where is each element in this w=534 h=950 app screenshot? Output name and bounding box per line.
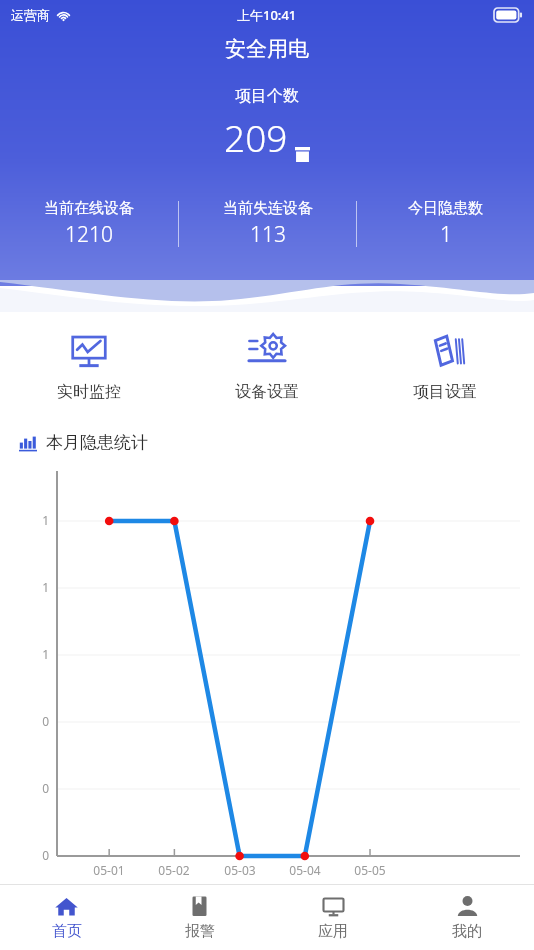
button[interactable]: 当前失连设备 bbox=[179, 188, 356, 260]
staticText: 设备设置 bbox=[235, 382, 299, 402]
staticText: 首页 bbox=[52, 922, 82, 941]
button[interactable]: 今日隐患数 bbox=[357, 188, 534, 260]
staticText: 0 bbox=[35, 780, 49, 796]
staticText: 当前失连设备 bbox=[223, 199, 313, 218]
staticText: 项目个数 bbox=[0, 86, 534, 106]
staticText: 1 bbox=[35, 579, 49, 595]
staticText: 1 bbox=[35, 512, 49, 528]
staticText: 1 bbox=[35, 646, 49, 662]
staticText: 05-02 bbox=[150, 862, 198, 878]
staticText: 安全用电 bbox=[0, 36, 534, 62]
staticText: 实时监控 bbox=[57, 382, 121, 402]
button[interactable]: 我的 bbox=[400, 885, 534, 950]
button[interactable]: 项目设置 bbox=[356, 326, 534, 406]
staticText: 05-05 bbox=[346, 862, 394, 878]
staticText: 应用 bbox=[318, 922, 348, 941]
button[interactable]: 当前在线设备 bbox=[0, 188, 178, 260]
other: 项目 bbox=[295, 147, 310, 156]
staticText: 本月隐患统计 bbox=[46, 432, 148, 453]
button[interactable]: 报警 bbox=[133, 885, 266, 950]
staticText: 113 bbox=[250, 220, 286, 249]
staticText: 05-01 bbox=[85, 862, 133, 878]
staticText: 今日隐患数 bbox=[408, 199, 483, 218]
staticText: 209 bbox=[224, 112, 288, 162]
staticText: 运营商 bbox=[11, 7, 50, 23]
staticText: 05-04 bbox=[281, 862, 329, 878]
staticText: 0 bbox=[35, 713, 49, 729]
staticText: 05-03 bbox=[216, 862, 264, 878]
button[interactable]: 应用 bbox=[266, 885, 400, 950]
staticText: 上午10:41 bbox=[237, 6, 297, 24]
button[interactable]: 实时监控 bbox=[0, 326, 178, 406]
staticText: 报警 bbox=[185, 922, 215, 941]
staticText: 1210 bbox=[65, 220, 113, 249]
staticText: 当前在线设备 bbox=[44, 199, 134, 218]
staticText: 项目设置 bbox=[413, 382, 477, 402]
staticText: 1 bbox=[440, 220, 452, 249]
staticText: 我的 bbox=[452, 922, 482, 941]
button[interactable]: 设备设置 bbox=[178, 326, 356, 406]
staticText: 0 bbox=[35, 847, 49, 863]
button[interactable]: 首页 bbox=[0, 885, 133, 950]
